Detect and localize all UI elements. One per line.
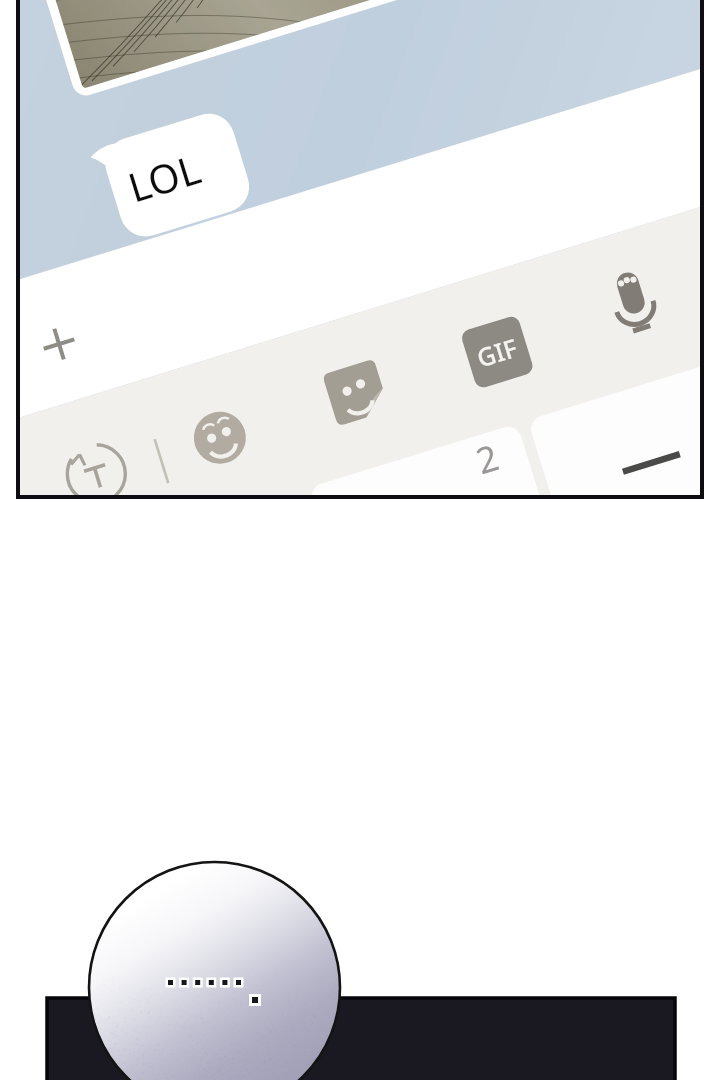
button[interactable]: Comic panel [0, 0, 720, 1080]
